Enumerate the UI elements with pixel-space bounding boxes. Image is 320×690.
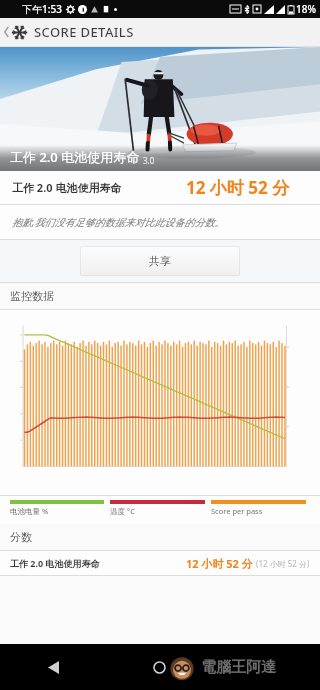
- staticText: 电池电量 %: [10, 506, 49, 516]
- staticText: 工作 2.0 电池使用寿命: [10, 148, 140, 166]
- staticText: 监控数据: [10, 289, 54, 303]
- staticText: 工作 2.0 电池使用寿命: [12, 180, 122, 195]
- staticText: 電腦王阿達: [201, 658, 276, 677]
- staticText: 18%: [296, 2, 316, 16]
- staticText: 3.0: [143, 155, 155, 166]
- staticText: 12 小时 52 分: [186, 556, 253, 571]
- button[interactable]: Recents: [213, 644, 320, 690]
- staticText: SCORE DETAILS: [34, 23, 134, 41]
- staticText: 温度 °C: [110, 506, 135, 516]
- staticText: 共享: [149, 254, 171, 268]
- staticText: (12 小时 52 分): [256, 558, 310, 569]
- staticText: 抱歉,我们没有足够的数据来对比此设备的分数。: [12, 215, 225, 229]
- staticText: 工作 2.0 电池使用寿命: [10, 557, 100, 569]
- button[interactable]: Back: [0, 18, 12, 46]
- button[interactable]: Home: [106, 644, 213, 690]
- staticText: 下午1:53: [22, 2, 62, 16]
- button[interactable]: Back: [0, 644, 106, 690]
- staticText: Score per pass: [211, 506, 263, 516]
- button[interactable]: 共享: [80, 246, 240, 276]
- staticText: 12 小时 52 分: [186, 176, 290, 199]
- staticText: 分数: [10, 530, 32, 544]
